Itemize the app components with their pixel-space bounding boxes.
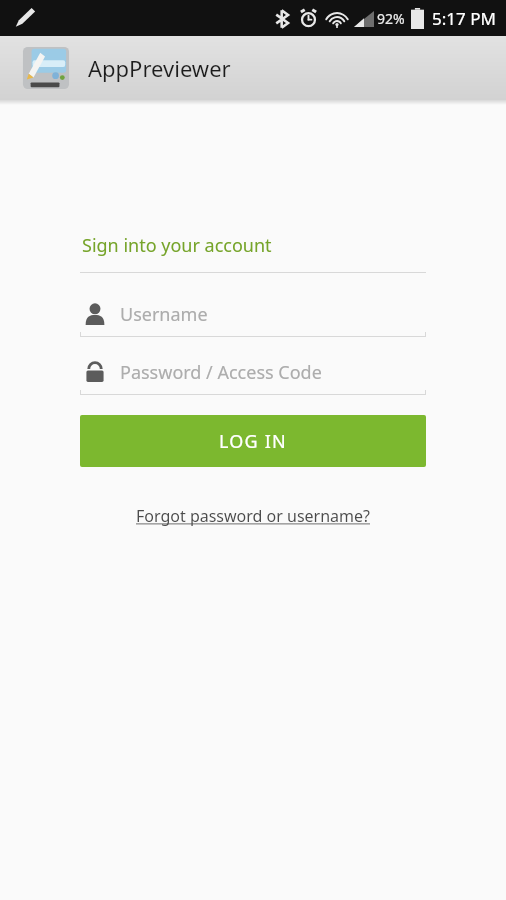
staticText: Sign into your account: [82, 233, 272, 258]
staticText: Username: [120, 302, 208, 327]
staticText: 5:17 PM: [432, 7, 496, 30]
button[interactable]: Forgot password or username?: [132, 501, 375, 531]
staticText: Forgot password or username?: [136, 505, 371, 527]
button[interactable]: LOG IN: [80, 415, 426, 467]
staticText: AppPreviewer: [88, 53, 231, 83]
staticText: 92%: [377, 9, 405, 28]
staticText: LOG IN: [219, 429, 287, 454]
button[interactable]: Password: [80, 355, 426, 395]
button[interactable]: Username: [80, 297, 426, 337]
staticText: Password / Access Code: [120, 360, 322, 385]
